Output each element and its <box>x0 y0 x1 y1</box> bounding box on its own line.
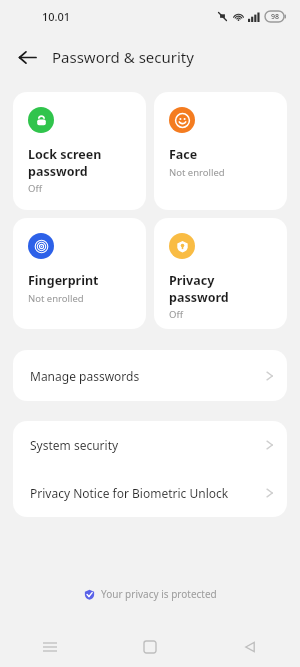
button[interactable]: Privacy Notice for Biometric Unlock <box>13 469 287 517</box>
staticText: Privacy password <box>169 272 229 305</box>
staticText: Off <box>28 182 42 195</box>
staticText: Privacy Notice for Biometric Unlock <box>30 485 229 501</box>
button[interactable]: Back <box>8 38 46 76</box>
staticText: Not enrolled <box>28 292 84 305</box>
staticText: Your privacy is protected <box>101 587 217 601</box>
button[interactable]: Privacy password <box>154 218 287 329</box>
staticText: Password & security <box>52 47 194 67</box>
button[interactable]: System security <box>13 421 287 469</box>
button[interactable]: Manage passwords <box>13 350 287 401</box>
staticText: System security <box>30 437 119 453</box>
staticText: Fingerprint <box>28 272 99 289</box>
staticText: Manage passwords <box>30 368 140 384</box>
button[interactable]: Recent apps <box>0 627 100 667</box>
button[interactable]: Back <box>200 627 300 667</box>
staticText: Off <box>169 308 183 321</box>
button[interactable]: Home <box>100 627 200 667</box>
staticText: Not enrolled <box>169 166 225 179</box>
staticText: 10.01 <box>42 9 71 24</box>
button[interactable]: Lock screen password <box>13 92 146 210</box>
button[interactable]: Face <box>154 92 287 210</box>
staticText: Lock screen password <box>28 146 102 179</box>
button[interactable]: Fingerprint <box>13 218 146 329</box>
staticText: 98 <box>271 12 280 22</box>
staticText: Face <box>169 146 198 163</box>
